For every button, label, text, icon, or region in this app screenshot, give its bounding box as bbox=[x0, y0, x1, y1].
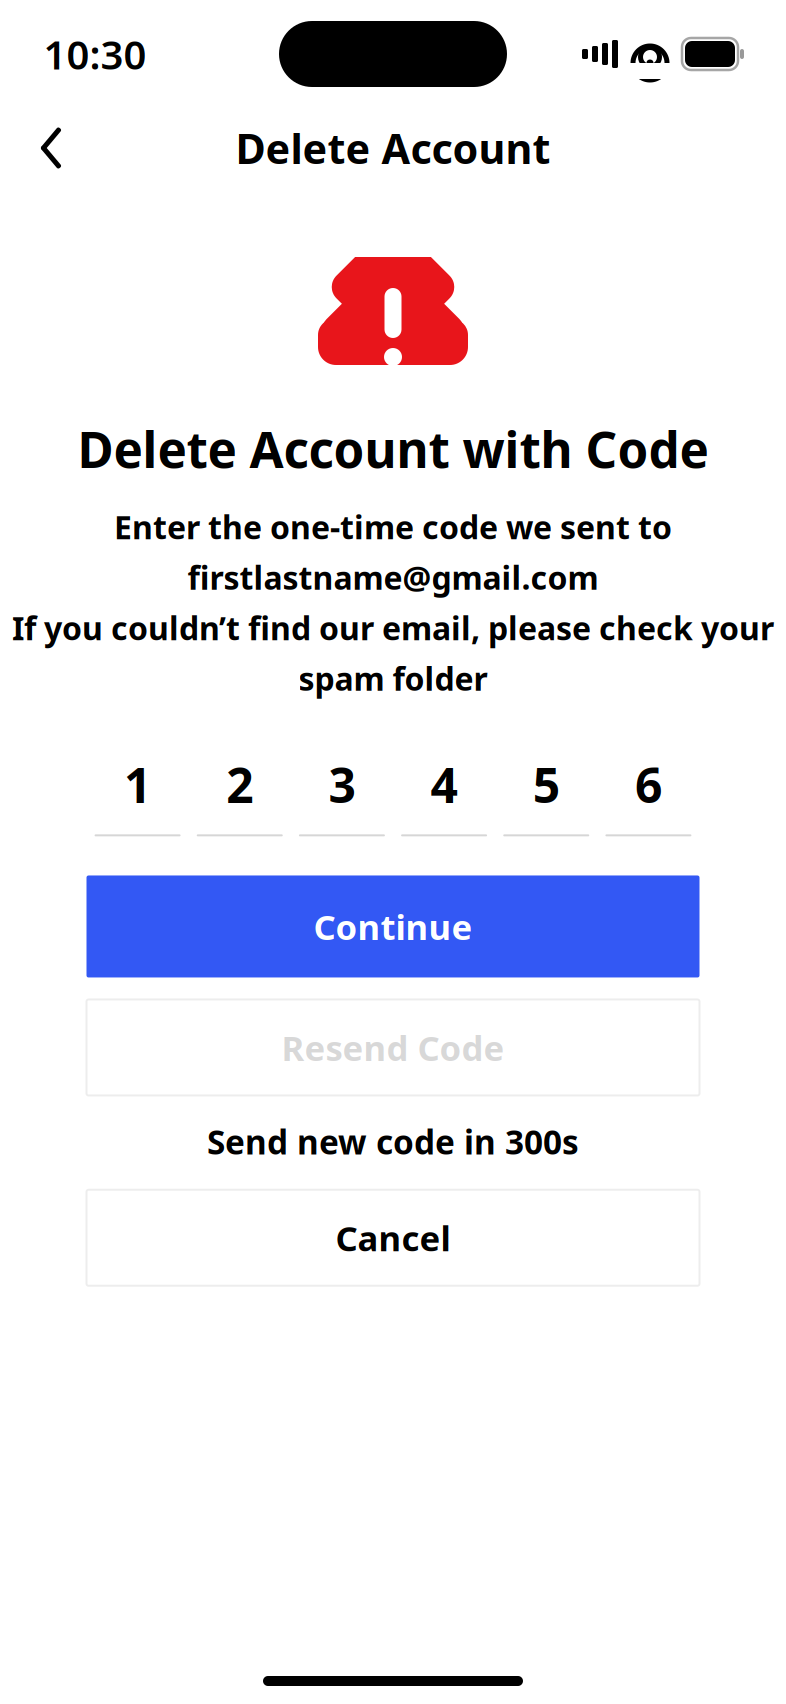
staticText: 2 bbox=[226, 753, 253, 816]
staticText: Enter the one-time code we sent to bbox=[114, 505, 672, 548]
staticText: 3 bbox=[328, 753, 355, 816]
staticText: 5 bbox=[533, 753, 560, 816]
button[interactable]: Resend Code bbox=[86, 999, 699, 1095]
button[interactable]: 5 bbox=[495, 751, 597, 837]
staticText: If you couldn’t find our email, please c… bbox=[12, 606, 774, 649]
staticText: spam folder bbox=[298, 657, 487, 699]
button[interactable]: 2 bbox=[189, 751, 291, 837]
button[interactable]: Back bbox=[14, 113, 88, 183]
staticText: Delete Account bbox=[235, 121, 550, 175]
staticText: Delete Account with Code bbox=[77, 416, 708, 481]
staticText: Cancel bbox=[335, 1215, 450, 1261]
staticText: firstlastname@gmail.com bbox=[187, 556, 598, 598]
staticText: 6 bbox=[635, 753, 662, 816]
button[interactable]: Continue bbox=[86, 875, 699, 977]
staticText: Resend Code bbox=[281, 1024, 504, 1070]
staticText: 4 bbox=[431, 753, 458, 816]
button[interactable]: 4 bbox=[393, 751, 495, 837]
button[interactable]: 1 bbox=[86, 751, 189, 837]
button[interactable]: 3 bbox=[291, 751, 393, 837]
button[interactable]: Cancel bbox=[86, 1190, 699, 1286]
staticText: Send new code in 300s bbox=[207, 1119, 579, 1164]
staticText: 10:30 bbox=[43, 27, 146, 80]
button[interactable]: 6 bbox=[597, 751, 699, 837]
staticText: 1 bbox=[124, 753, 151, 816]
staticText: Continue bbox=[313, 903, 472, 949]
